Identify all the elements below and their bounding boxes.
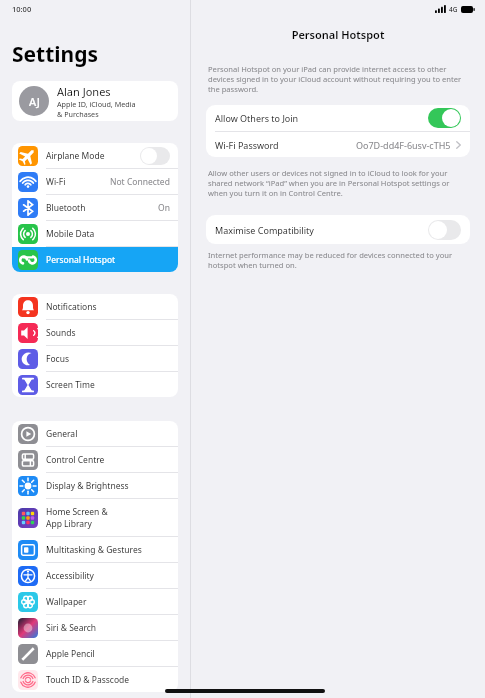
- staticText: Apple ID, iCloud, Media: [57, 99, 136, 109]
- staticText: Allow Others to Join: [215, 112, 299, 124]
- button[interactable]: Wi-Fi: [12, 169, 178, 195]
- staticText: Settings: [12, 40, 99, 69]
- button[interactable]: Wallpaper: [12, 589, 178, 615]
- button[interactable]: Sounds: [12, 320, 178, 346]
- staticText: On: [158, 202, 170, 214]
- button[interactable]: Home Screen &: [12, 499, 178, 537]
- button[interactable]: Wi-Fi Password: [206, 132, 470, 157]
- staticText: Alan Jones: [57, 84, 111, 99]
- staticText: Bluetooth: [46, 202, 86, 214]
- button[interactable]: Multitasking & Gestures: [12, 537, 178, 563]
- staticText: Sounds: [46, 327, 76, 339]
- button[interactable]: Touch ID & Passcode: [12, 667, 178, 692]
- staticText: Screen Time: [46, 379, 95, 391]
- staticText: Personal Hotspot: [191, 27, 485, 42]
- staticText: Display & Brightness: [46, 480, 129, 492]
- button[interactable]: Accessibility: [12, 563, 178, 589]
- staticText: General: [46, 428, 78, 440]
- staticText: AJ: [29, 94, 40, 109]
- button[interactable]: Focus: [12, 346, 178, 372]
- button[interactable]: Toggle off: [428, 220, 461, 240]
- button[interactable]: AJ: [12, 81, 178, 121]
- staticText: 4G: [449, 5, 458, 14]
- staticText: Maximise Compatibility: [215, 224, 314, 236]
- staticText: Control Centre: [46, 454, 105, 466]
- button[interactable]: Maximise Compatibility: [206, 215, 470, 244]
- button[interactable]: Toggle on: [428, 108, 461, 128]
- staticText: Airplane Mode: [46, 150, 105, 162]
- staticText: App Library: [46, 518, 92, 530]
- staticText: Not Connected: [110, 176, 170, 188]
- staticText: Mobile Data: [46, 228, 95, 240]
- staticText: Touch ID & Passcode: [46, 674, 130, 686]
- staticText: Personal Hotspot on your iPad can provid…: [208, 64, 468, 94]
- button[interactable]: Siri & Search: [12, 615, 178, 641]
- button[interactable]: Control Centre: [12, 447, 178, 473]
- staticText: Wallpaper: [46, 596, 87, 608]
- button[interactable]: Apple Pencil: [12, 641, 178, 667]
- button[interactable]: Bluetooth: [12, 195, 178, 221]
- staticText: Notifications: [46, 301, 97, 313]
- staticText: Home Screen &: [46, 506, 108, 518]
- button[interactable]: Airplane Mode: [12, 143, 178, 169]
- button[interactable]: Screen Time: [12, 372, 178, 397]
- button[interactable]: Notifications: [12, 294, 178, 320]
- staticText: Personal Hotspot: [46, 254, 116, 266]
- staticText: Siri & Search: [46, 622, 97, 634]
- staticText: Apple Pencil: [46, 648, 95, 660]
- button[interactable]: Display & Brightness: [12, 473, 178, 499]
- button[interactable]: Allow Others to Join: [206, 105, 470, 131]
- staticText: Accessibility: [46, 570, 94, 582]
- staticText: 10:00: [12, 4, 32, 14]
- button[interactable]: General: [12, 421, 178, 447]
- staticText: Wi-Fi Password: [215, 139, 279, 151]
- button[interactable]: Toggle off: [140, 147, 170, 165]
- staticText: Focus: [46, 353, 69, 365]
- button[interactable]: Mobile Data: [12, 221, 178, 247]
- staticText: Multitasking & Gestures: [46, 544, 142, 556]
- staticText: Internet performance may be reduced for …: [208, 250, 468, 270]
- staticText: & Purchases: [57, 109, 99, 119]
- staticText: Oo7D-dd4F-6usv-cTH5: [356, 139, 451, 151]
- button[interactable]: Personal Hotspot: [12, 247, 178, 272]
- staticText: Allow other users or devices not signed …: [208, 168, 468, 198]
- staticText: Wi-Fi: [46, 176, 66, 188]
